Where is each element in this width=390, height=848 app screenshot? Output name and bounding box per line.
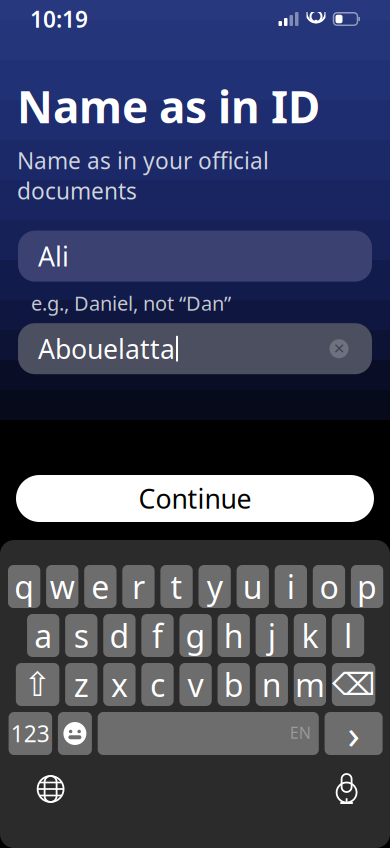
button[interactable]: w xyxy=(46,565,78,608)
staticText: h xyxy=(224,614,244,657)
button[interactable]: Emoji xyxy=(58,712,92,755)
staticText: 10:19 xyxy=(30,4,88,34)
button[interactable]: u xyxy=(237,565,269,608)
staticText: i xyxy=(287,565,295,608)
staticText: z xyxy=(74,663,89,706)
staticText: j xyxy=(268,614,276,657)
button[interactable]: 123 xyxy=(9,712,52,755)
button[interactable]: c xyxy=(141,663,174,706)
staticText: s xyxy=(74,614,89,657)
staticText: k xyxy=(301,614,318,657)
staticText: ⇧ xyxy=(24,666,52,703)
staticText: n xyxy=(262,663,282,706)
staticText: Name as in your official documents xyxy=(17,145,269,206)
staticText: p xyxy=(357,565,377,608)
staticText: y xyxy=(207,565,223,608)
staticText: r xyxy=(132,565,145,608)
staticText: f xyxy=(152,614,163,657)
button[interactable]: s xyxy=(65,614,97,657)
staticText: EN xyxy=(290,722,311,743)
button[interactable]: Delete xyxy=(332,663,375,706)
button[interactable]: e xyxy=(84,565,116,608)
button[interactable]: Continue xyxy=(16,475,374,522)
button[interactable]: p xyxy=(351,565,383,608)
button[interactable]: Return xyxy=(325,712,383,755)
staticText: o xyxy=(319,565,338,608)
button[interactable]: r xyxy=(122,565,155,608)
button[interactable]: j xyxy=(256,614,288,657)
button[interactable]: i xyxy=(275,565,307,608)
staticText: e xyxy=(91,565,109,608)
staticText: a xyxy=(34,614,52,657)
button[interactable]: Shift xyxy=(16,663,59,706)
staticText: l xyxy=(344,614,352,657)
staticText: › xyxy=(348,707,360,760)
button[interactable]: v xyxy=(179,663,212,706)
staticText: t xyxy=(170,565,182,608)
staticText: m xyxy=(295,663,325,706)
button[interactable]: y xyxy=(198,565,231,608)
staticText: ✕ xyxy=(333,340,345,357)
button[interactable]: Next keyboard xyxy=(31,769,71,809)
button[interactable]: o xyxy=(313,565,345,608)
button[interactable]: g xyxy=(179,614,212,657)
button[interactable]: q xyxy=(8,565,40,608)
button[interactable]: Clear text xyxy=(326,336,352,362)
button[interactable]: x xyxy=(103,663,136,706)
button[interactable]: l xyxy=(332,614,364,657)
staticText: d xyxy=(109,614,129,657)
staticText: g xyxy=(186,614,206,657)
button[interactable]: f xyxy=(141,614,174,657)
staticText: Abouelatta xyxy=(38,331,175,366)
button[interactable]: n xyxy=(256,663,288,706)
button[interactable]: d xyxy=(103,614,135,657)
button[interactable]: Space xyxy=(98,712,319,755)
button[interactable]: Dictate xyxy=(333,774,361,804)
button[interactable]: h xyxy=(217,614,250,657)
button[interactable]: k xyxy=(294,614,326,657)
staticText: v xyxy=(188,663,204,706)
staticText: x xyxy=(111,663,128,706)
button[interactable]: z xyxy=(65,663,97,706)
staticText: Continue xyxy=(138,481,251,516)
button[interactable]: m xyxy=(294,663,326,706)
staticText: w xyxy=(50,565,75,608)
staticText: q xyxy=(14,565,34,608)
button[interactable]: a xyxy=(27,614,59,657)
button[interactable]: Abouelatta xyxy=(18,323,372,374)
staticText: Name as in ID xyxy=(17,77,320,135)
staticText: e.g., Daniel, not “Dan” xyxy=(31,290,231,316)
button[interactable]: t xyxy=(160,565,193,608)
staticText: u xyxy=(243,565,263,608)
button[interactable]: b xyxy=(217,663,250,706)
staticText: ⌫ xyxy=(332,667,375,702)
staticText: c xyxy=(150,663,165,706)
staticText: 123 xyxy=(11,718,50,748)
staticText: b xyxy=(224,663,244,706)
button[interactable]: Ali xyxy=(18,231,372,282)
staticText: Ali xyxy=(38,238,69,274)
